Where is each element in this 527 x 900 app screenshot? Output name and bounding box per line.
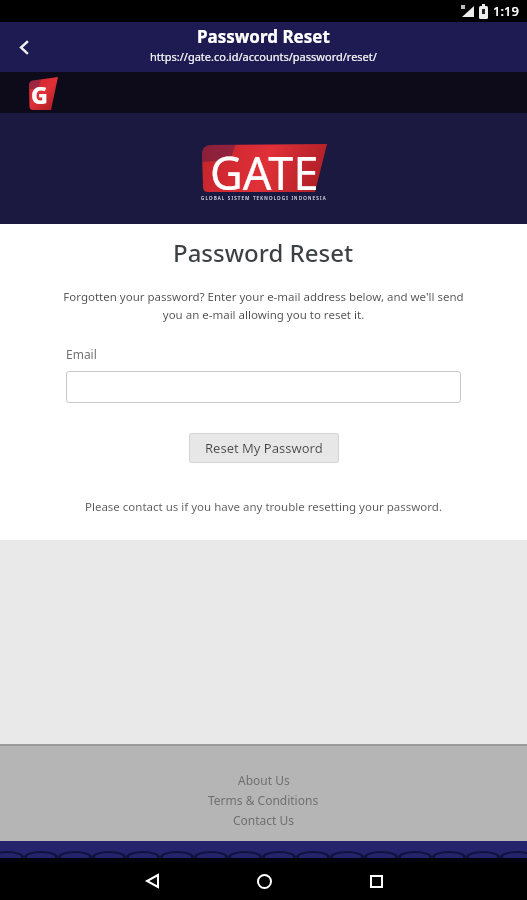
button[interactable] bbox=[144, 873, 160, 889]
staticText: Contact Us bbox=[233, 812, 295, 828]
staticText: GATE bbox=[210, 142, 319, 190]
staticText: Please contact us if you have any troubl… bbox=[85, 499, 442, 515]
staticText: Terms & Conditions bbox=[208, 792, 319, 808]
staticText: Email bbox=[66, 346, 97, 362]
staticText: 1:19 bbox=[493, 2, 519, 20]
staticText: About Us bbox=[238, 772, 290, 788]
button[interactable]: Reset My Password bbox=[189, 433, 339, 463]
button[interactable] bbox=[256, 873, 272, 889]
button[interactable] bbox=[368, 873, 384, 889]
staticText: Forgotten your password? Enter your e-ma… bbox=[0, 289, 527, 322]
staticText: GLOBAL SISTEM TEKNOLOGI INDONESIA bbox=[201, 195, 327, 201]
button[interactable]: About Us bbox=[238, 772, 290, 788]
button[interactable] bbox=[10, 33, 38, 61]
button[interactable] bbox=[66, 371, 461, 403]
button[interactable]: Contact Us bbox=[233, 812, 295, 828]
staticText: https://gate.co.id/accounts/password/res… bbox=[150, 49, 377, 64]
staticText: Password Reset bbox=[173, 236, 354, 269]
button[interactable]: G bbox=[28, 77, 58, 109]
staticText: G bbox=[31, 79, 48, 109]
button[interactable]: Terms & Conditions bbox=[208, 792, 319, 808]
staticText: Reset My Password bbox=[205, 439, 323, 457]
staticText: Password Reset bbox=[197, 25, 330, 48]
